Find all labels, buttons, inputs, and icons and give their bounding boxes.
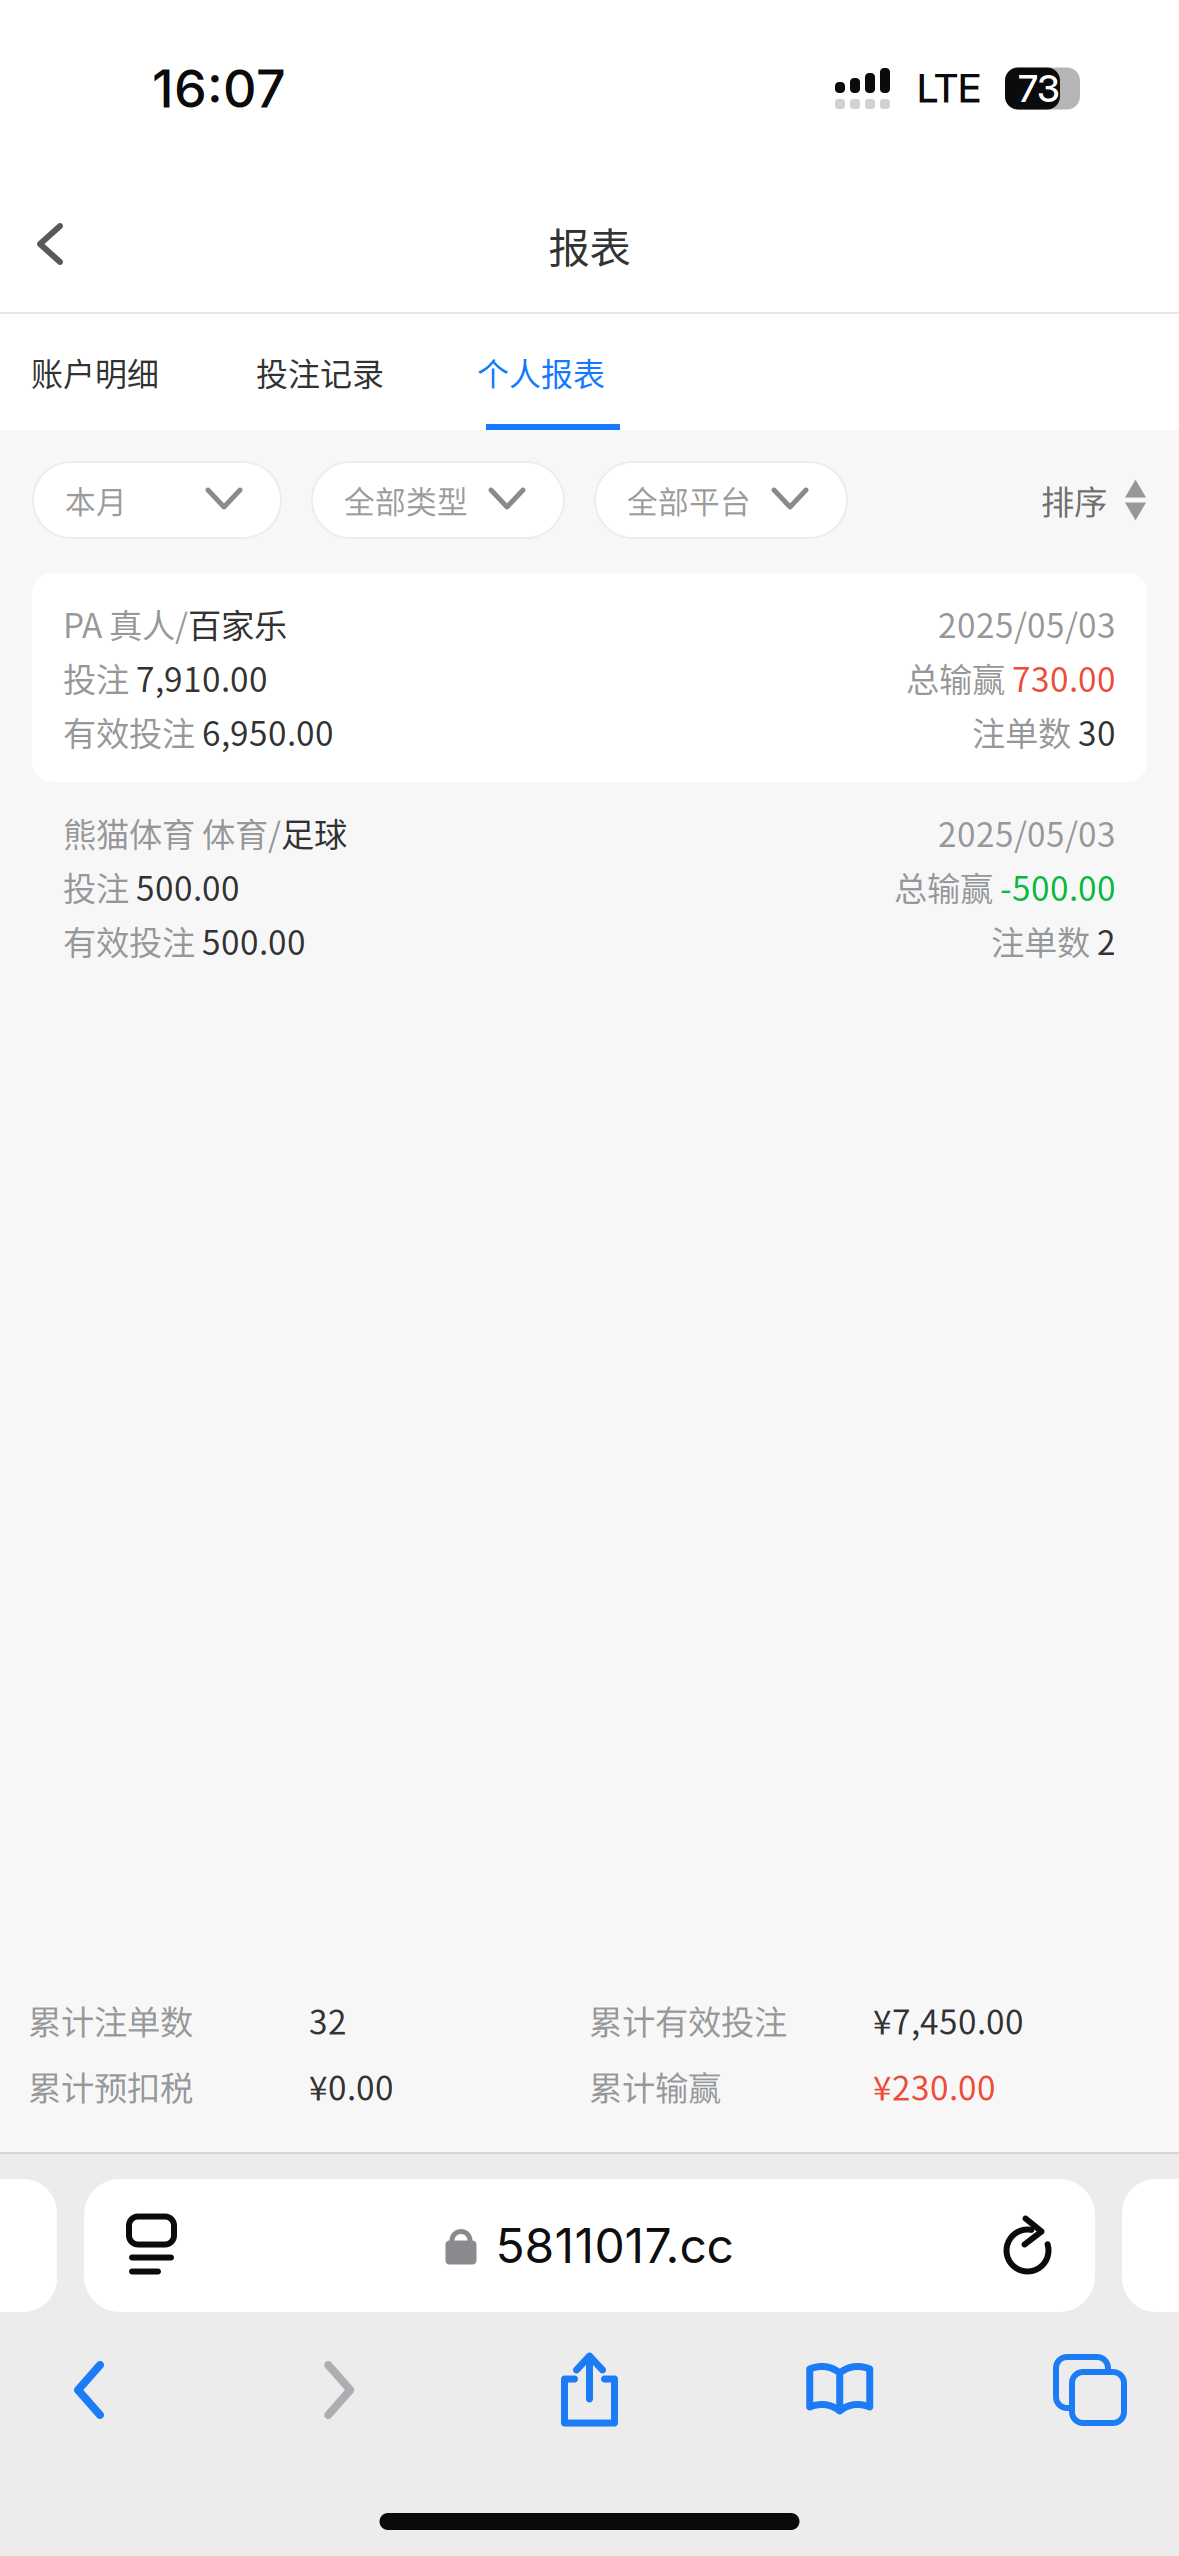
staticText: 6,950.00 xyxy=(202,707,334,756)
button[interactable]: Bookmarks xyxy=(775,2330,905,2450)
staticText: 30 xyxy=(1078,707,1116,756)
staticText: 总输赢 xyxy=(894,862,1000,911)
staticText: 足球 xyxy=(281,808,347,857)
staticText: 730.00 xyxy=(1012,653,1116,702)
staticText: 2 xyxy=(1097,916,1116,965)
staticText: 投注记录 xyxy=(256,349,384,395)
button[interactable]: Forward xyxy=(274,2330,404,2450)
button[interactable]: Share xyxy=(524,2330,654,2450)
button[interactable]: 排序 xyxy=(1041,462,1146,538)
button[interactable]: Page settings xyxy=(84,2179,219,2312)
staticText: LTE xyxy=(917,65,981,112)
button[interactable]: 本月 xyxy=(33,462,281,538)
staticText: 2025/05/03 xyxy=(938,599,1116,648)
staticText: 500.00 xyxy=(136,862,240,911)
staticText: 5811017.cc xyxy=(495,2216,733,2275)
staticText: 百家乐 xyxy=(188,599,287,648)
button[interactable]: PA 真人/ xyxy=(0,570,1179,782)
staticText: PA 真人/ xyxy=(63,599,188,648)
staticText: 累计输赢 xyxy=(589,2062,721,2110)
button[interactable]: 账户明细 xyxy=(31,314,161,430)
staticText: ¥7,450.00 xyxy=(873,1996,1024,2044)
staticText: 16:07 xyxy=(152,57,286,120)
staticText: 投注 xyxy=(63,862,136,911)
button[interactable]: 个人报表 xyxy=(477,314,607,430)
button[interactable]: Tabs xyxy=(1025,2330,1155,2450)
button[interactable]: 全部平台 xyxy=(595,462,847,538)
button[interactable]: Back xyxy=(24,2330,154,2450)
staticText: 32 xyxy=(309,1996,347,2044)
staticText: 有效投注 xyxy=(63,707,202,756)
staticText: 本月 xyxy=(65,478,127,522)
staticText: 500.00 xyxy=(202,916,306,965)
staticText: 累计预扣税 xyxy=(28,2062,193,2110)
staticText: 投注 xyxy=(63,653,136,702)
staticText: 总输赢 xyxy=(906,653,1012,702)
button[interactable]: Back xyxy=(0,170,104,314)
staticText: 7,910.00 xyxy=(136,653,268,702)
staticText: 注单数 xyxy=(972,707,1078,756)
staticText: 73 xyxy=(1018,66,1060,111)
staticText: ¥0.00 xyxy=(309,2062,394,2110)
button[interactable]: 投注记录 xyxy=(256,314,386,430)
staticText: 账户明细 xyxy=(31,349,159,395)
staticText: 熊猫体育 体育/ xyxy=(63,808,281,857)
staticText: 个人报表 xyxy=(477,349,605,395)
staticText: 排序 xyxy=(1041,476,1107,524)
staticText: 2025/05/03 xyxy=(938,808,1116,857)
staticText: ¥230.00 xyxy=(873,2062,996,2110)
button[interactable]: 熊猫体育 体育/ xyxy=(0,782,1179,991)
staticText: 有效投注 xyxy=(63,916,202,965)
staticText: 报表 xyxy=(548,215,630,275)
staticText: 累计注单数 xyxy=(28,1996,193,2044)
button[interactable]: 全部类型 xyxy=(312,462,564,538)
staticText: 全部平台 xyxy=(627,478,751,522)
staticText: 累计有效投注 xyxy=(589,1996,787,2044)
button[interactable]: Reload xyxy=(960,2179,1095,2312)
staticText: -500.00 xyxy=(1000,862,1116,911)
staticText: 全部类型 xyxy=(344,478,468,522)
staticText: 注单数 xyxy=(991,916,1097,965)
